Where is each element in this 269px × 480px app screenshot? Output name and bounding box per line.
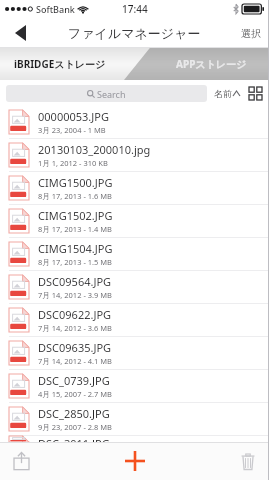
staticText: 4月 15, 2007 - 2.7 MB [38, 389, 112, 399]
button[interactable]: 20130103_200010.jpg [0, 139, 269, 172]
button[interactable]: CIMG1504.JPG [0, 238, 269, 271]
staticText: 9月 23, 2007 - 2.8 MB [38, 422, 112, 432]
staticText: 20130103_200010.jpg [38, 142, 151, 157]
button[interactable]: DSC09635.JPG [0, 337, 269, 370]
staticText: DSC09622.JPG [38, 307, 112, 322]
staticText: 7月 14, 2012 - 4.1 MB [38, 356, 112, 366]
button[interactable]: DSC_2850.JPG [0, 403, 269, 436]
staticText: DSC_3011.JPG [38, 436, 110, 442]
staticText: 7月 14, 2012 - 3.9 MB [38, 290, 112, 300]
button[interactable]: Delete [235, 448, 261, 474]
staticText: 8月 17, 2013 - 1.5 MB [38, 257, 112, 267]
button[interactable]: 名前 [214, 88, 240, 99]
staticText: ファイルマネージャー [68, 25, 201, 41]
button[interactable]: DSC09622.JPG [0, 304, 269, 337]
staticText: CIMG1500.JPG [38, 175, 113, 190]
button[interactable]: DSC_0739.JPG [0, 370, 269, 403]
button[interactable]: Add [119, 445, 151, 477]
staticText: 選択 [241, 27, 261, 40]
button[interactable]: Search [6, 85, 207, 102]
button[interactable]: Share [8, 448, 34, 474]
button[interactable]: APPストレージ [176, 57, 247, 71]
staticText: 7月 14, 2012 - 3.6 MB [38, 323, 112, 333]
button[interactable]: iBRIDGEストレージ [14, 57, 106, 71]
staticText: Search [97, 88, 126, 100]
staticText: DSC_2850.JPG [38, 406, 110, 421]
staticText: CIMG1502.JPG [38, 208, 113, 223]
staticText: DSC_0739.JPG [38, 373, 110, 388]
button[interactable]: CIMG1500.JPG [0, 172, 269, 205]
staticText: DSC09635.JPG [38, 340, 112, 355]
staticText: 8月 17, 2013 - 1.6 MB [38, 191, 112, 201]
staticText: CIMG1504.JPG [38, 241, 113, 256]
button[interactable]: DSC09564.JPG [0, 271, 269, 304]
button[interactable]: CIMG1502.JPG [0, 205, 269, 238]
button[interactable]: 00000053.JPG [0, 106, 269, 139]
staticText: 名前 [214, 88, 232, 99]
button[interactable]: Grid view [247, 85, 263, 101]
staticText: 17:44 [122, 2, 148, 16]
button[interactable]: DSC_3011.JPG [0, 436, 269, 442]
staticText: 3月 23, 2004 - 1 MB [38, 125, 106, 135]
staticText: 8月 17, 2013 - 1.4 MB [38, 224, 112, 234]
staticText: SoftBank [36, 3, 75, 15]
staticText: DSC09564.JPG [38, 274, 112, 289]
button[interactable]: Back [0, 18, 40, 48]
button[interactable]: 選択 [241, 27, 261, 40]
staticText: 00000053.JPG [38, 109, 109, 124]
staticText: 1月 1, 2012 - 310 KB [38, 158, 108, 168]
